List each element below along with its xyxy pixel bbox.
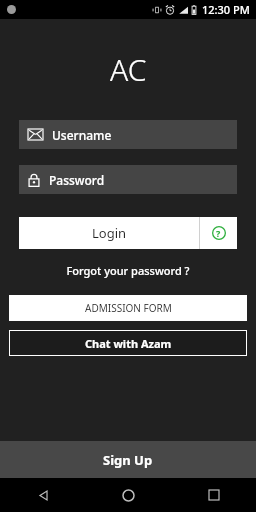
button[interactable]: Recent apps bbox=[171, 478, 256, 512]
staticText: Password bbox=[49, 172, 105, 188]
button[interactable]: Chat with Azam bbox=[9, 330, 247, 356]
button[interactable]: ADMISSION FORM bbox=[9, 295, 247, 321]
staticText: ADMISSION FORM bbox=[85, 301, 172, 315]
button[interactable]: Forgot your password ? bbox=[66, 263, 190, 278]
button[interactable]: Sign Up bbox=[0, 441, 256, 478]
staticText: AC bbox=[110, 49, 147, 90]
button[interactable]: Login bbox=[19, 217, 199, 249]
staticText: ? bbox=[216, 227, 221, 239]
staticText: Username bbox=[52, 127, 112, 143]
button[interactable]: Home bbox=[86, 478, 171, 512]
button[interactable]: Username bbox=[19, 120, 237, 149]
staticText: Sign Up bbox=[103, 451, 153, 469]
staticText: Login bbox=[92, 224, 127, 242]
button[interactable]: Back bbox=[0, 478, 86, 512]
staticText: 12:30 PM bbox=[202, 2, 250, 17]
button[interactable]: Help bbox=[200, 217, 237, 249]
staticText: Chat with Azam bbox=[85, 336, 172, 351]
button[interactable]: Password bbox=[19, 165, 237, 194]
